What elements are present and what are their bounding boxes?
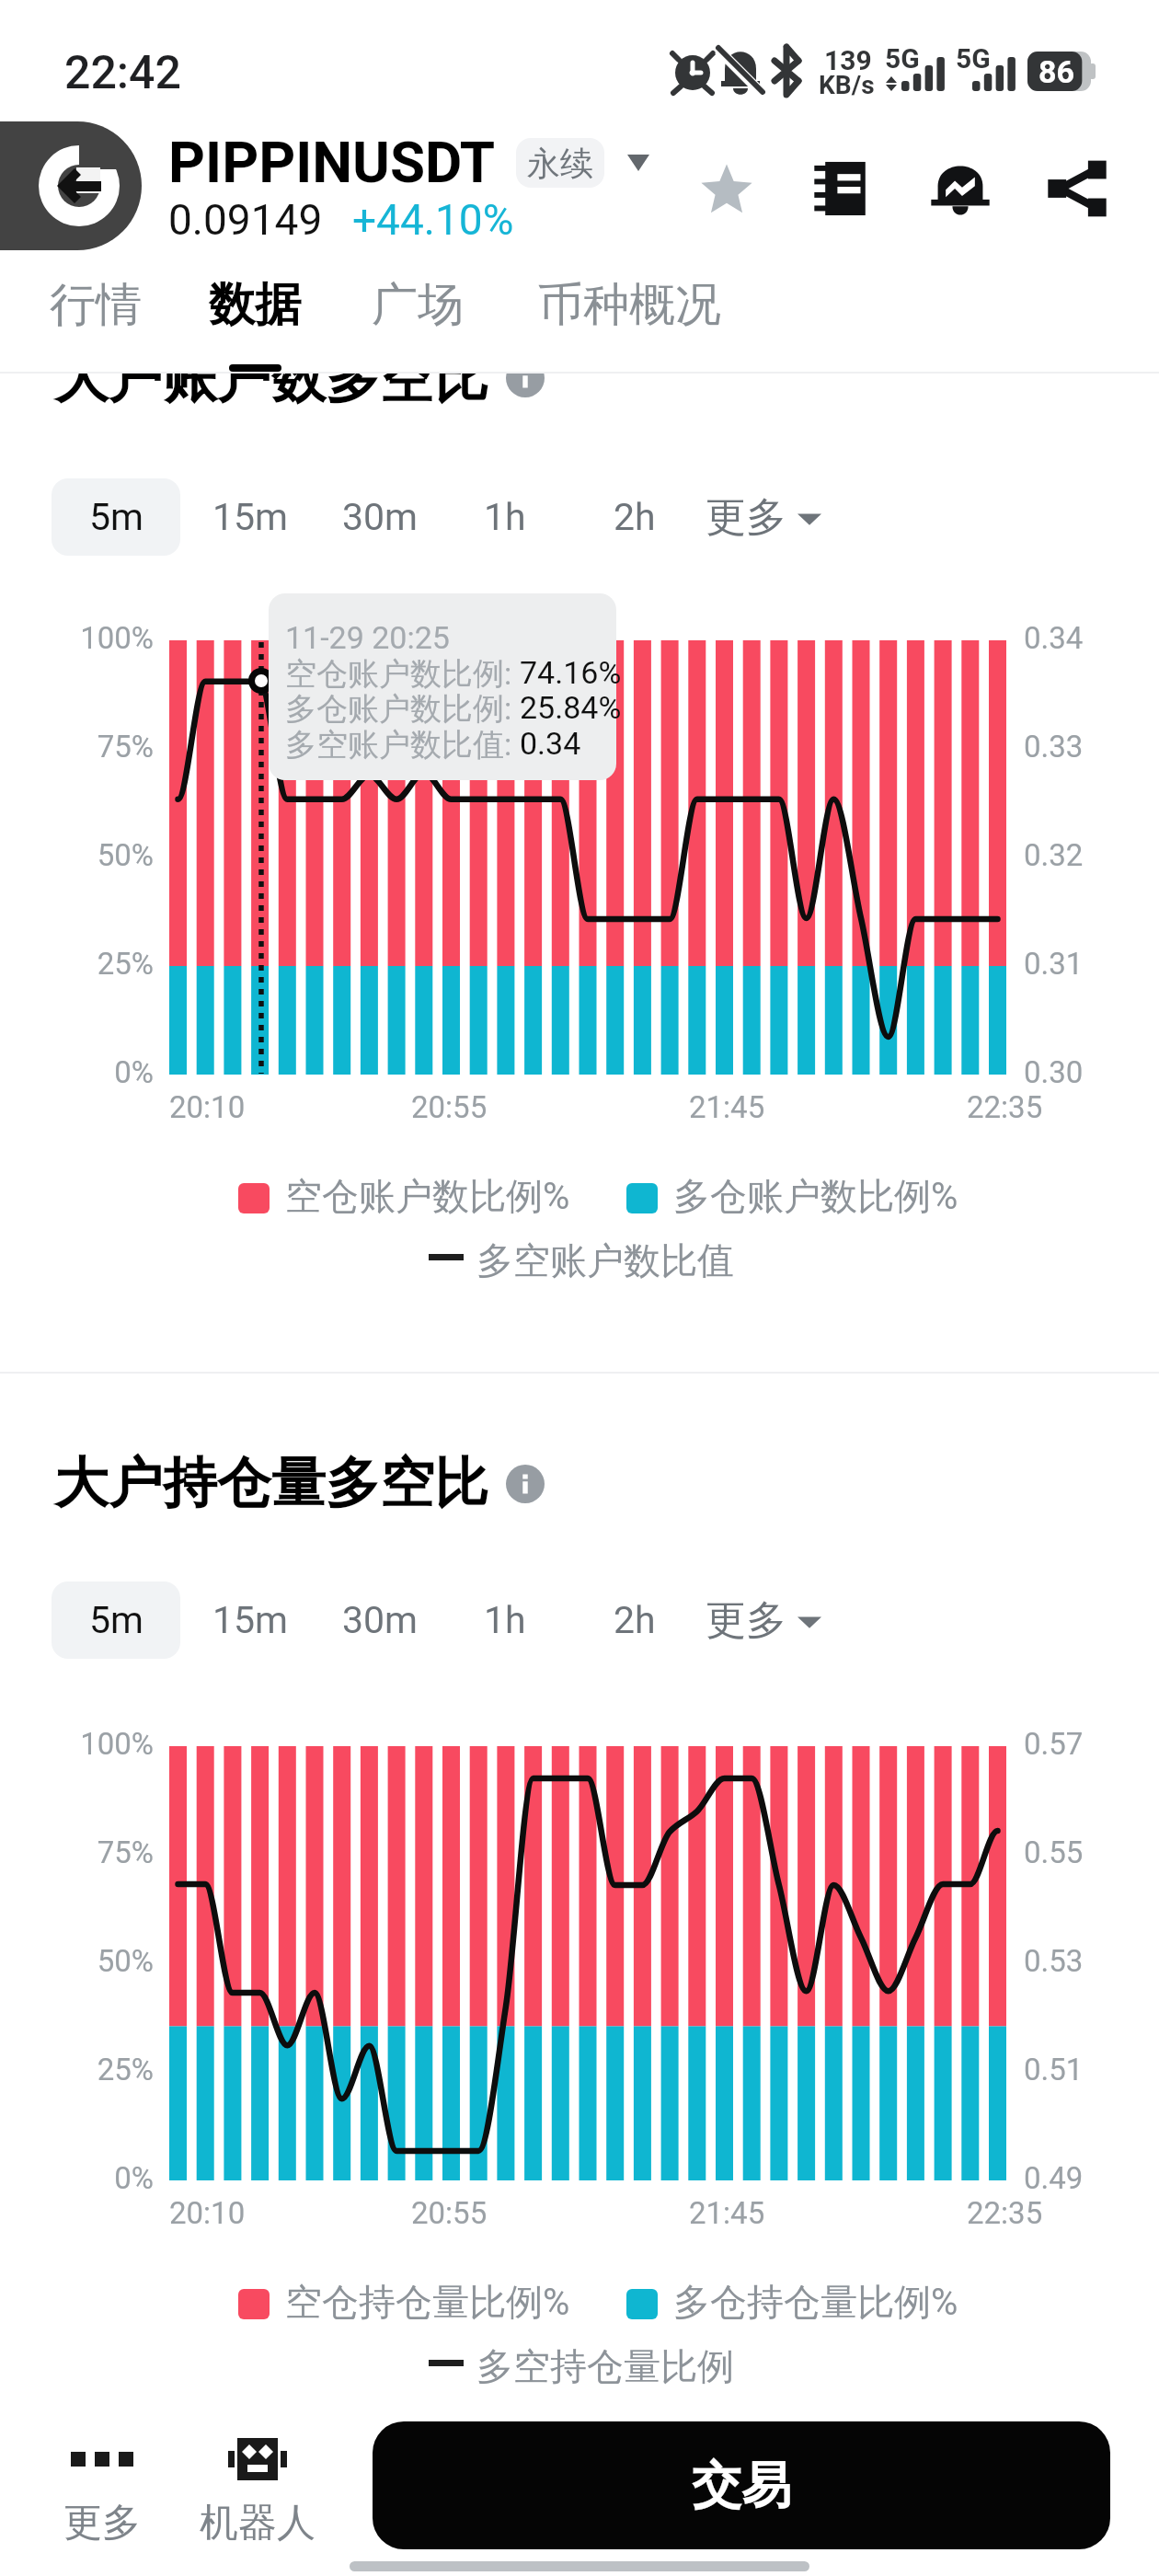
staticText: PIPPINUSDT <box>168 129 496 196</box>
staticText: 15m <box>212 1598 289 1642</box>
button[interactable]: Notes <box>803 148 884 229</box>
staticText: 0.09149 <box>168 195 323 245</box>
staticText: 0.51 <box>1024 2052 1084 2087</box>
button[interactable]: 机器人 <box>179 2436 336 2547</box>
staticText: 更多 <box>706 492 786 543</box>
staticText: 20:10 <box>169 1089 246 1125</box>
staticText: KB/s <box>819 70 875 100</box>
staticText: 30m <box>342 495 419 539</box>
staticText: 50% <box>0 837 154 873</box>
staticText: 多空持仓量比例 <box>476 2343 734 2389</box>
staticText: 22:35 <box>967 1089 1043 1125</box>
staticText: 1h <box>484 1598 526 1642</box>
button[interactable]: Back <box>0 121 142 250</box>
staticText: 20:55 <box>411 1089 488 1125</box>
staticText: 1h <box>484 495 526 539</box>
button[interactable]: 交易 <box>373 2421 1110 2549</box>
staticText: 更多 <box>706 1595 786 1646</box>
button[interactable]: Info <box>506 1465 545 1503</box>
staticText: 22:42 <box>64 46 181 100</box>
staticText: 币种概况 <box>537 276 721 334</box>
staticText: 25% <box>0 2052 154 2087</box>
staticText: 25.84% <box>520 689 622 726</box>
staticText: 2h <box>614 1598 656 1642</box>
button[interactable]: 更多 <box>24 2436 180 2547</box>
staticText: 11-29 20:25 <box>285 619 450 656</box>
button[interactable]: Alerts <box>920 148 1001 229</box>
staticText: 30m <box>342 1598 419 1642</box>
staticText: 20:55 <box>411 2195 488 2231</box>
staticText: 更多 <box>63 2499 141 2547</box>
staticText: 22:35 <box>967 2195 1043 2231</box>
staticText: 25% <box>0 946 154 982</box>
button[interactable]: 更多 <box>706 478 821 556</box>
staticText: 0.53 <box>1024 1943 1084 1979</box>
staticText: 0.33 <box>1024 729 1084 765</box>
staticText: 0.55 <box>1024 1834 1084 1870</box>
staticText: 86 <box>1039 53 1075 90</box>
staticText: 21:45 <box>689 1089 765 1125</box>
button[interactable]: 数据 <box>209 263 301 372</box>
button[interactable]: 15m <box>212 1581 289 1659</box>
button[interactable]: 币种概况 <box>537 263 721 372</box>
staticText: 50% <box>0 1943 154 1979</box>
staticText: 多仓账户数比例% <box>673 1173 958 1219</box>
staticText: 0.32 <box>1024 837 1084 873</box>
button[interactable]: 广场 <box>372 263 464 372</box>
staticText: 数据 <box>209 276 301 334</box>
staticText: 多空账户数比值: <box>285 725 520 765</box>
button[interactable]: 15m <box>212 478 289 556</box>
staticText: 交易 <box>692 2455 791 2517</box>
button[interactable]: Favorite <box>686 148 767 229</box>
button[interactable]: 行情 <box>50 263 142 372</box>
staticText: 大户持仓量多空比 <box>54 1449 488 1517</box>
staticText: 机器人 <box>200 2499 316 2547</box>
staticText: 5G <box>956 42 991 75</box>
staticText: 5G <box>885 42 920 75</box>
staticText: 0.30 <box>1024 1054 1084 1090</box>
staticText: 0.34 <box>520 725 581 762</box>
button[interactable]: 5m <box>52 478 180 556</box>
staticText: 2h <box>614 495 656 539</box>
staticText: 0.31 <box>1024 946 1084 982</box>
staticText: 5m <box>89 1598 143 1642</box>
button[interactable]: Share <box>1037 148 1118 229</box>
staticText: 100% <box>0 620 154 656</box>
staticText: 空仓持仓量比例% <box>285 2279 570 2325</box>
staticText: 空仓账户数比例% <box>285 1173 570 1219</box>
staticText: 21:45 <box>689 2195 765 2231</box>
staticText: 空仓账户数比例: <box>285 654 520 694</box>
staticText: 0% <box>0 1054 154 1090</box>
button[interactable]: 1h <box>484 478 526 556</box>
staticText: 74.16% <box>520 654 622 691</box>
staticText: 多仓账户数比例: <box>285 689 520 729</box>
staticText: 0.49 <box>1024 2160 1084 2196</box>
button[interactable]: 2h <box>614 1581 656 1659</box>
button[interactable]: 30m <box>342 478 419 556</box>
staticText: 多空账户数比值 <box>476 1237 734 1283</box>
staticText: +44.10% <box>352 195 514 245</box>
staticText: 广场 <box>372 276 464 334</box>
staticText: 多仓持仓量比例% <box>673 2279 958 2325</box>
staticText: 75% <box>0 1834 154 1870</box>
staticText: 0% <box>0 2160 154 2196</box>
staticText: 永续 <box>527 143 593 184</box>
staticText: 100% <box>0 1726 154 1762</box>
staticText: 行情 <box>50 276 142 334</box>
staticText: 139 <box>824 44 872 76</box>
button[interactable]: 5m <box>52 1581 180 1659</box>
staticText: 大户账户数多空比 <box>54 344 488 412</box>
staticText: 0.34 <box>1024 620 1084 656</box>
button[interactable]: 更多 <box>706 1581 821 1659</box>
button[interactable]: 2h <box>614 478 656 556</box>
button[interactable]: 30m <box>342 1581 419 1659</box>
staticText: 5m <box>89 495 143 539</box>
staticText: 75% <box>0 729 154 765</box>
staticText: 15m <box>212 495 289 539</box>
staticText: 20:10 <box>169 2195 246 2231</box>
button[interactable]: 1h <box>484 1581 526 1659</box>
button[interactable]: Info <box>506 359 545 397</box>
staticText: 0.57 <box>1024 1726 1084 1762</box>
